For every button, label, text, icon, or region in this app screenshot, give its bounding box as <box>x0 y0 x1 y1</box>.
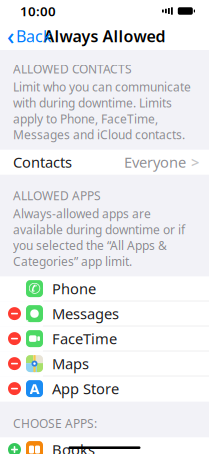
staticText: Limit who you can communicate with durin… <box>13 79 191 143</box>
staticText: Phone <box>52 279 96 298</box>
staticText: Back <box>16 25 52 47</box>
staticText: Contacts <box>13 152 72 172</box>
button[interactable]: A <box>0 376 209 401</box>
staticText: ✆ <box>28 280 40 297</box>
staticText: Maps <box>52 354 89 373</box>
button[interactable]: Books <box>0 437 209 454</box>
button[interactable]: Messages <box>0 301 209 326</box>
staticText: Everyone <box>124 152 186 172</box>
staticText: 10:00 <box>20 2 56 20</box>
button[interactable]: ‹ <box>0 17 52 55</box>
staticText: Always Allowed <box>43 25 165 47</box>
staticText: ALLOWED CONTACTS <box>13 61 132 77</box>
staticText: FaceTime <box>52 329 117 348</box>
staticText: Messages <box>52 304 119 323</box>
button[interactable]: ✆ <box>0 276 209 301</box>
staticText: Always-allowed apps are available during… <box>13 206 185 269</box>
staticText: A <box>29 379 39 398</box>
button[interactable]: FaceTime <box>0 326 209 351</box>
staticText: Books <box>52 440 95 454</box>
staticText: App Store <box>52 379 119 398</box>
staticText: > <box>191 152 199 172</box>
button[interactable]: Maps <box>0 351 209 376</box>
staticText: ALLOWED APPS <box>13 188 101 204</box>
staticText: CHOOSE APPS: <box>13 415 97 431</box>
button[interactable]: Contacts <box>0 150 209 175</box>
staticText: ‹ <box>7 21 14 51</box>
